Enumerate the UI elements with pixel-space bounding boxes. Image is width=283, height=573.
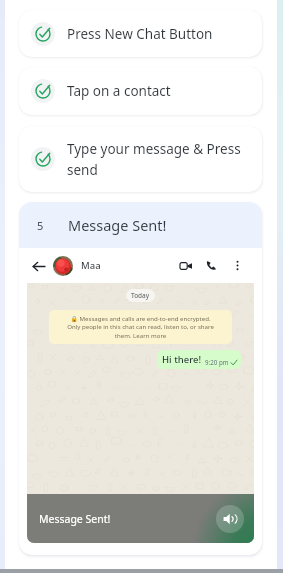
button[interactable]: 5 — [19, 202, 262, 248]
staticText: 9:20 pm — [205, 358, 229, 366]
staticText: Maa — [81, 259, 101, 272]
button[interactable]: Sound — [216, 505, 244, 533]
staticText: 5 — [37, 218, 44, 233]
button[interactable]: More options — [228, 256, 247, 275]
staticText: Hi there! — [162, 353, 202, 366]
button[interactable]: Video call — [176, 256, 195, 275]
button[interactable]: Press New Chat Button — [19, 10, 262, 57]
staticText: Press New Chat Button — [67, 25, 213, 43]
button[interactable]: Call — [202, 256, 221, 275]
button[interactable]: Tap on a contact — [19, 67, 262, 115]
button[interactable]: Back — [29, 257, 47, 275]
staticText: Message Sent! — [68, 215, 167, 235]
button[interactable]: Type your message & Press send — [19, 126, 262, 192]
staticText: Tap on a contact — [67, 82, 171, 100]
staticText: Today — [131, 291, 150, 300]
staticText: Message Sent! — [39, 512, 111, 526]
staticText: Type your message & Press send — [67, 140, 250, 179]
staticText: 🔒 Messages and calls are end-to-end encr… — [54, 314, 227, 340]
